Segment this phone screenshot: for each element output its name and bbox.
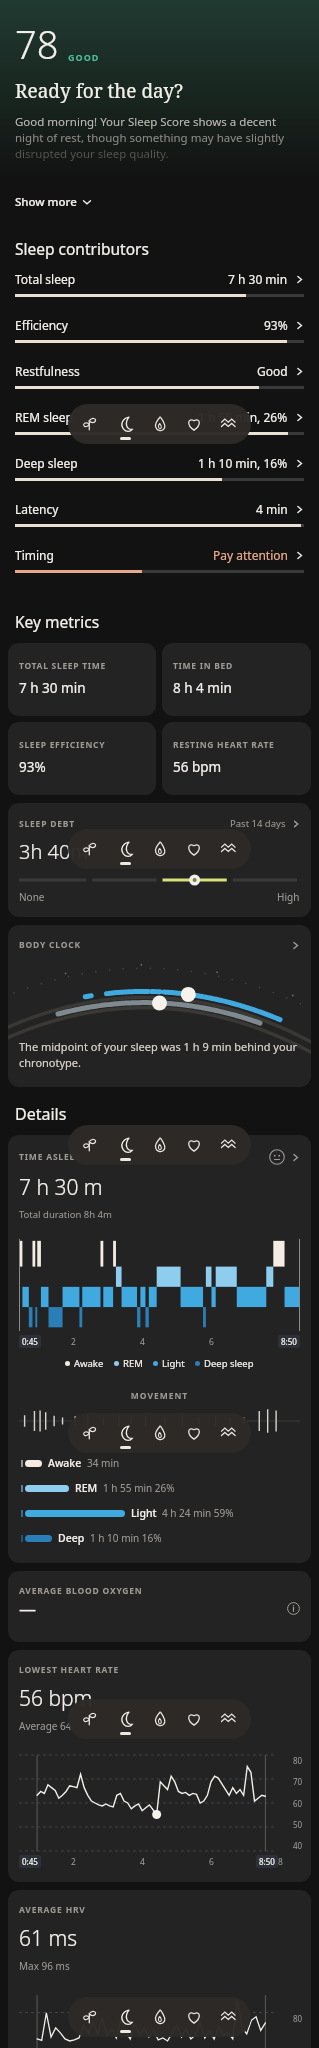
button[interactable]: Sleep [112,836,138,862]
button[interactable]: Heart [181,411,207,437]
button[interactable]: Total sleep [0,271,319,317]
staticText: 56 bpm [19,1684,93,1713]
staticText: disrupted your sleep quality. [15,146,169,162]
staticText: BODY CLOCK [19,939,81,951]
staticText: Latency [15,501,59,517]
button[interactable]: Info [287,1602,300,1615]
staticText: Light [131,1506,157,1520]
button[interactable]: BODY CLOCK [8,925,311,1087]
staticText: Key metrics [15,611,100,632]
button[interactable]: Mood [269,1149,285,1165]
staticText: Details [15,1103,67,1125]
staticText: 6 [209,1856,214,1868]
staticText: 6 [209,1336,214,1348]
button[interactable]: Activity [77,1132,103,1158]
staticText: 34 min [87,1456,120,1470]
button[interactable]: TIME IN BED [162,643,311,716]
button[interactable]: REM sleep [0,409,319,455]
button[interactable]: Trends [216,1132,242,1158]
button[interactable]: Trends [216,2004,242,2030]
button[interactable]: Latency [0,501,319,547]
button[interactable]: Readiness [147,411,173,437]
staticText: 93% [264,317,288,333]
staticText: 1 h 10 min 16% [90,1531,162,1545]
staticText: Total duration 8h 4m [19,1208,112,1221]
staticText: 93% [19,758,46,776]
button[interactable]: SLEEP DEBT [8,803,311,917]
staticText: Ready for the day? [15,78,184,104]
staticText: MOVEMENT [8,1390,311,1402]
staticText: 4 [140,1856,145,1868]
button[interactable]: Heart [181,2004,207,2030]
button[interactable]: Sleep [112,411,138,437]
button[interactable]: Heart [181,1420,207,1446]
staticText: 3h 40m [19,838,89,865]
staticText: 1 h 55 min, 26% [198,409,288,425]
staticText: 80 [293,1755,303,1766]
button[interactable]: Trends [216,1420,242,1446]
button[interactable]: Sleep [112,1706,138,1732]
staticText: LOWEST HEART RATE [19,1664,119,1676]
button[interactable]: Show more [0,192,319,216]
button[interactable]: Heart [181,1706,207,1732]
staticText: — [19,1597,36,1620]
button[interactable]: Readiness [147,836,173,862]
staticText: TOTAL SLEEP TIME [19,660,106,672]
button[interactable]: Heart [181,836,207,862]
staticText: Average 64 [19,1719,72,1733]
staticText: 0:45 [22,1856,38,1867]
button[interactable]: Trends [216,411,242,437]
button[interactable]: Sleep [112,2004,138,2030]
button[interactable]: Sleep [112,1132,138,1158]
staticText: 4 h 24 min 59% [162,1506,234,1520]
staticText: 4 min [256,501,288,517]
staticText: SLEEP DEBT [19,818,75,830]
button[interactable]: Activity [77,836,103,862]
button[interactable]: Readiness [147,2004,173,2030]
staticText: TIME ASLEEP [19,1151,82,1163]
staticText: 7 h 30 min [19,679,86,697]
button[interactable]: Efficiency [0,317,319,363]
button[interactable]: Readiness [147,1706,173,1732]
staticText: Good morning! Your Sleep Score shows a d… [15,114,277,130]
button[interactable]: AVERAGE HRV [8,1890,311,2048]
button[interactable]: AVERAGE BLOOD OXYGEN [8,1571,311,1642]
staticText: Timing [15,547,54,563]
button[interactable]: SLEEP EFFICIENCY [8,722,156,795]
staticText: RESTING HEART RATE [173,739,275,751]
button[interactable]: Readiness [147,1132,173,1158]
staticText: High [277,890,300,904]
staticText: REM [123,1357,143,1370]
staticText: Deep [58,1531,85,1545]
staticText: Show more [15,194,77,210]
staticText: 0:45 [22,1336,38,1347]
staticText: 78 [15,18,59,70]
button[interactable]: TIME ASLEEP [8,1135,311,1563]
staticText: 1 h 10 min, 16% [198,455,288,471]
button[interactable]: TOTAL SLEEP TIME [8,643,156,716]
button[interactable]: Sleep [112,1420,138,1446]
button[interactable]: Activity [77,1706,103,1732]
staticText: Max 96 ms [19,1959,70,1973]
staticText: 2 [71,1856,76,1868]
button[interactable]: Readiness [147,1420,173,1446]
button[interactable]: Activity [77,411,103,437]
button[interactable]: Heart [181,1132,207,1158]
button[interactable]: LOWEST HEART RATE [8,1650,311,1882]
button[interactable]: RESTING HEART RATE [162,722,311,795]
staticText: 8:50 [281,1336,297,1347]
staticText: 56 bpm [173,758,222,776]
button[interactable]: Deep sleep [0,455,319,501]
button[interactable]: Timing [0,547,319,593]
button[interactable]: Trends [216,1706,242,1732]
button[interactable]: Activity [77,1420,103,1446]
staticText: 8:50 [259,1856,275,1867]
button[interactable]: Trends [216,836,242,862]
staticText: 7 h 30 m [19,1173,103,1202]
staticText: SLEEP EFFICIENCY [19,739,106,751]
button[interactable]: Activity [77,2004,103,2030]
button[interactable]: Restfulness [0,363,319,409]
staticText: AVERAGE BLOOD OXYGEN [19,1585,143,1597]
staticText: 61 ms [19,1924,78,1953]
staticText: 4 [140,1336,145,1348]
